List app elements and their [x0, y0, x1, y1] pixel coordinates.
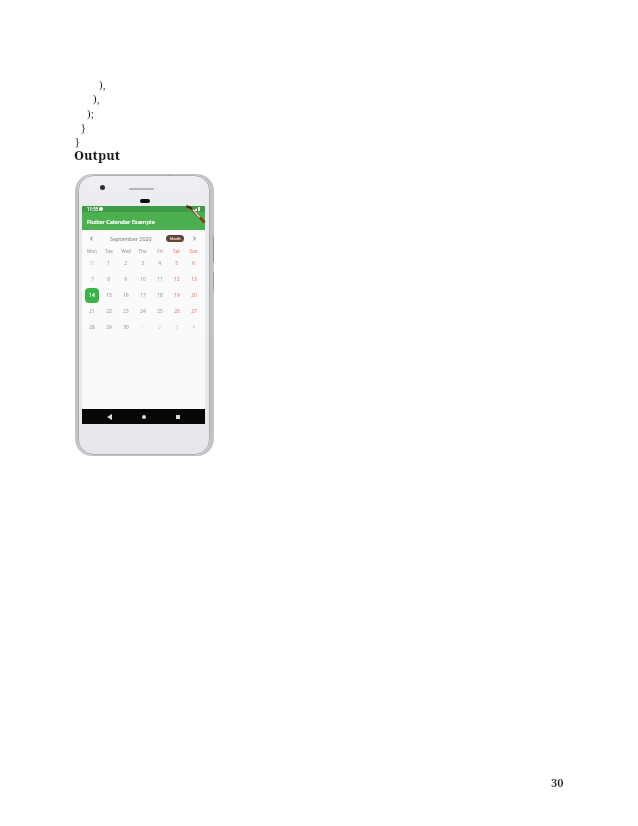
staticText: 17 — [140, 292, 146, 299]
button[interactable]: 2 — [117, 255, 134, 271]
staticText: 23 — [123, 308, 129, 315]
button[interactable]: 25 — [151, 303, 168, 319]
button[interactable]: 23 — [117, 303, 134, 319]
staticText: 21 — [89, 308, 95, 315]
staticText: 2 — [124, 260, 127, 267]
staticText: 2 — [158, 324, 161, 331]
button[interactable]: 8 — [100, 271, 117, 287]
button[interactable]: 2 — [151, 319, 168, 335]
staticText: 27 — [191, 308, 197, 315]
button[interactable]: 20 — [185, 287, 202, 303]
staticText: 25 — [157, 308, 163, 315]
staticText: 1 — [107, 260, 110, 267]
staticText: 28 — [89, 324, 95, 331]
staticText: 10 — [140, 276, 146, 283]
staticText: 30 — [123, 324, 129, 331]
staticText: 30 — [551, 775, 564, 790]
staticText: Output — [74, 147, 120, 164]
staticText: 14 — [89, 292, 95, 299]
button[interactable]: 13 — [185, 271, 202, 287]
button[interactable]: 22 — [100, 303, 117, 319]
button[interactable]: 7 — [84, 271, 100, 287]
staticText: 6 — [192, 260, 195, 267]
staticText: 1 — [141, 324, 144, 331]
staticText: ); — [87, 106, 94, 121]
button[interactable]: 3 — [168, 319, 185, 335]
button[interactable]: 4 — [151, 255, 168, 271]
button[interactable]: 28 — [84, 319, 100, 335]
button[interactable]: Month — [166, 235, 184, 242]
staticText: 12 — [174, 276, 180, 283]
staticText: 31 — [89, 260, 95, 267]
button[interactable]: 30 — [117, 319, 134, 335]
button[interactable]: Home — [127, 409, 161, 424]
staticText: } — [75, 134, 80, 149]
staticText: 26 — [174, 308, 180, 315]
button[interactable]: Recent apps — [161, 409, 195, 424]
button[interactable]: 29 — [100, 319, 117, 335]
staticText: 5 — [175, 260, 178, 267]
staticText: 3 — [141, 260, 144, 267]
button[interactable]: 17 — [134, 287, 151, 303]
staticText: 3 — [175, 324, 178, 331]
button[interactable]: 9 — [117, 271, 134, 287]
staticText: Sun — [189, 248, 198, 254]
staticText: 7 — [91, 276, 94, 283]
staticText: ), — [99, 77, 106, 92]
button[interactable]: Previous month — [82, 230, 100, 246]
button[interactable]: 1 — [134, 319, 151, 335]
button[interactable]: 19 — [168, 287, 185, 303]
staticText: Month — [170, 236, 181, 241]
staticText: 29 — [106, 324, 112, 331]
button[interactable]: Next month — [184, 230, 205, 246]
button[interactable]: 6 — [185, 255, 202, 271]
button[interactable]: 24 — [134, 303, 151, 319]
button[interactable]: 1 — [100, 255, 117, 271]
button[interactable]: 31 — [84, 255, 100, 271]
button[interactable]: 27 — [185, 303, 202, 319]
staticText: } — [81, 120, 86, 135]
staticText: Thu — [138, 248, 147, 254]
button[interactable]: 15 — [100, 287, 117, 303]
staticText: 18 — [157, 292, 163, 299]
staticText: 19 — [174, 292, 180, 299]
staticText: Tue — [105, 248, 113, 254]
button[interactable]: Back — [92, 409, 127, 424]
staticText: September 2020 — [110, 235, 152, 242]
button[interactable]: 12 — [168, 271, 185, 287]
staticText: 11 — [157, 276, 163, 283]
button[interactable]: 11 — [151, 271, 168, 287]
staticText: Fri — [157, 248, 163, 254]
staticText: 20 — [191, 292, 197, 299]
staticText: Mon — [87, 248, 97, 254]
staticText: ), — [93, 91, 100, 106]
staticText: 4 — [192, 324, 195, 331]
button[interactable]: 16 — [117, 287, 134, 303]
button[interactable]: 3 — [134, 255, 151, 271]
staticText: 4 — [158, 260, 161, 267]
staticText: 11:55 — [87, 206, 99, 212]
button[interactable]: 18 — [151, 287, 168, 303]
button[interactable]: 10 — [134, 271, 151, 287]
staticText: 8 — [107, 276, 110, 283]
staticText: 22 — [106, 308, 112, 315]
staticText: 16 — [123, 292, 129, 299]
staticText: Sat — [173, 248, 180, 254]
button[interactable]: 4 — [185, 319, 202, 335]
button[interactable]: 5 — [168, 255, 185, 271]
staticText: 13 — [191, 276, 197, 283]
button[interactable]: 21 — [84, 303, 100, 319]
button[interactable]: 14 — [84, 287, 100, 303]
staticText: 15 — [106, 292, 112, 299]
staticText: Flutter Calendar Example — [87, 218, 155, 226]
staticText: 24 — [140, 308, 146, 315]
staticText: 9 — [124, 276, 127, 283]
button[interactable]: 26 — [168, 303, 185, 319]
staticText: Wed — [121, 248, 131, 254]
